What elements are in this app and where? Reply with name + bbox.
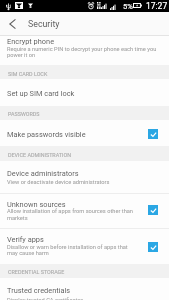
- staticText: Allow installation of apps from sources …: [7, 208, 134, 215]
- staticText: View or deactivate device administrators: [7, 179, 110, 186]
- button[interactable]: Toggle setting: [148, 242, 158, 252]
- staticText: SIM CARD LOCK: [8, 71, 48, 77]
- button[interactable]: Encrypt phone: [0, 36, 169, 65]
- staticText: Set up SIM card lock: [7, 89, 75, 98]
- staticText: Make passwords visible: [7, 130, 86, 139]
- staticText: markets: [7, 215, 28, 222]
- button[interactable]: Trusted credentials: [0, 278, 169, 300]
- button[interactable]: Toggle setting: [148, 129, 158, 139]
- staticText: Disallow or warn before installation of …: [7, 244, 128, 251]
- button[interactable]: Verify apps: [0, 228, 169, 264]
- button[interactable]: Make passwords visible: [0, 120, 169, 146]
- staticText: Device administrators: [7, 169, 79, 178]
- staticText: 5%: [123, 2, 133, 11]
- staticText: may cause harm: [7, 250, 49, 257]
- button[interactable]: Unknown sources: [0, 193, 169, 228]
- staticText: DEVICE ADMINISTRATION: [8, 152, 72, 158]
- staticText: Verify apps: [7, 235, 44, 244]
- staticText: PASSWORDS: [8, 111, 40, 117]
- button[interactable]: Toggle setting: [148, 205, 158, 215]
- staticText: power it on: [7, 52, 36, 59]
- staticText: Encrypt phone: [7, 37, 55, 46]
- staticText: Display trusted CA certificates: [7, 297, 84, 300]
- staticText: Trusted credentials: [7, 286, 71, 295]
- button[interactable]: Back: [0, 12, 24, 36]
- staticText: Security: [28, 19, 60, 29]
- staticText: Unknown sources: [7, 200, 66, 209]
- staticText: 17:27: [146, 1, 168, 11]
- staticText: Require a numeric PIN to decrypt your ph…: [7, 46, 157, 53]
- button[interactable]: Set up SIM card lock: [0, 79, 169, 106]
- button[interactable]: Device administrators: [0, 160, 169, 193]
- staticText: CREDENTIAL STORAGE: [8, 269, 65, 275]
